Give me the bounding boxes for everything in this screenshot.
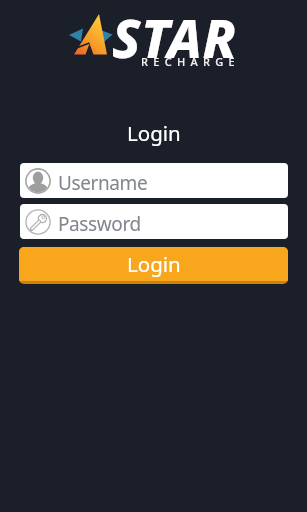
button[interactable]: Username: [20, 163, 288, 198]
staticText: Username: [58, 170, 148, 196]
staticText: Password: [58, 211, 141, 237]
button[interactable]: Login: [19, 247, 288, 284]
staticText: STAR: [112, 1, 237, 73]
staticText: RECHARGE: [141, 54, 240, 69]
staticText: Login: [127, 250, 181, 278]
button[interactable]: Password: [20, 204, 288, 239]
staticText: Login: [127, 119, 181, 147]
